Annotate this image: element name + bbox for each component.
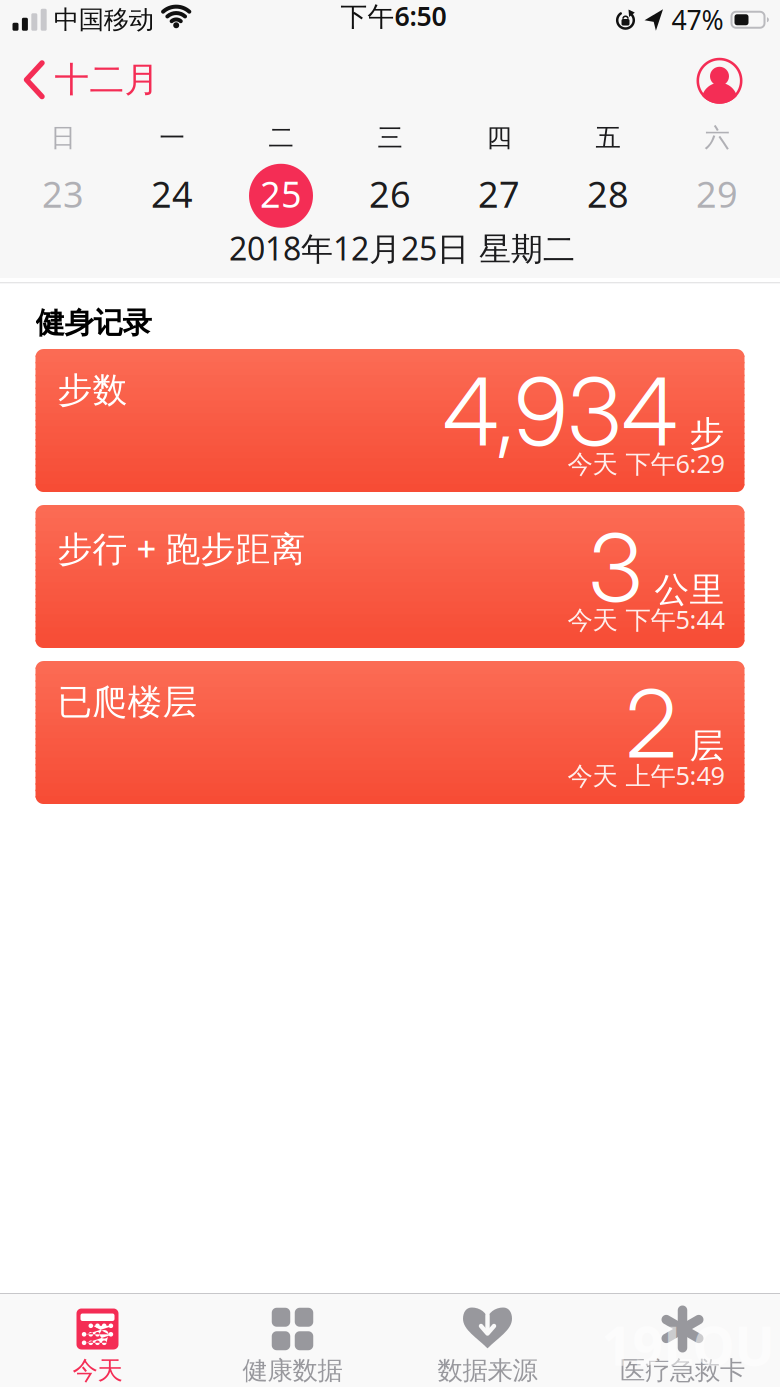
staticText: 19LOU bbox=[601, 1310, 774, 1380]
staticText: 中国移动 bbox=[54, 4, 154, 35]
button[interactable]: 医疗急救卡 bbox=[585, 1305, 780, 1386]
button[interactable]: 步数 bbox=[35, 349, 744, 492]
staticText: 二 bbox=[268, 122, 293, 153]
button[interactable]: 12月28日 bbox=[553, 164, 662, 228]
button[interactable]: 12月26日 bbox=[335, 164, 444, 228]
staticText: 28 bbox=[587, 170, 629, 218]
staticText: 五 bbox=[595, 122, 620, 153]
button[interactable]: 今天 bbox=[0, 1305, 195, 1386]
staticText: 步 bbox=[689, 413, 724, 455]
button[interactable]: 12月27日 bbox=[444, 164, 553, 228]
staticText: 2 bbox=[625, 667, 677, 780]
staticText: 十二月 bbox=[54, 58, 159, 101]
button[interactable]: 健康数据 bbox=[195, 1305, 390, 1386]
staticText: 23 bbox=[42, 170, 84, 218]
button[interactable]: 数据来源 bbox=[390, 1305, 585, 1386]
button[interactable]: 个人资料 bbox=[696, 46, 780, 92]
staticText: 步数 bbox=[57, 369, 127, 412]
staticText: 今天 下午6:29 bbox=[567, 446, 724, 480]
staticText: 47% bbox=[671, 2, 723, 37]
button[interactable]: 12月25日 bbox=[226, 164, 335, 228]
staticText: 健康数据 bbox=[242, 1355, 342, 1386]
staticText: 医疗急救卡 bbox=[620, 1355, 745, 1386]
staticText: 27 bbox=[478, 170, 520, 218]
staticText: 2018年12月25日 星期二 bbox=[229, 227, 575, 269]
staticText: 25 bbox=[260, 170, 302, 218]
staticText: 29 bbox=[696, 170, 738, 218]
staticText: 4,934 bbox=[442, 355, 677, 468]
staticText: 六 bbox=[704, 122, 729, 153]
staticText: 日 bbox=[50, 122, 75, 153]
button[interactable]: 12月29日 bbox=[662, 164, 771, 228]
staticText: 3 bbox=[588, 511, 642, 624]
button[interactable]: 12月24日 bbox=[117, 164, 226, 228]
staticText: 数据来源 bbox=[437, 1355, 537, 1386]
staticText: 24 bbox=[151, 170, 193, 218]
staticText: 步行 + 跑步距离 bbox=[57, 525, 305, 571]
button[interactable]: 返回 十二月 bbox=[0, 47, 159, 90]
staticText: 今天 bbox=[72, 1355, 122, 1386]
button[interactable]: 已爬楼层 bbox=[35, 661, 744, 804]
button[interactable]: 步行 + 跑步距离 bbox=[35, 505, 744, 648]
button[interactable]: 12月23日 bbox=[8, 164, 117, 228]
staticText: 今天 下午5:44 bbox=[567, 602, 724, 636]
staticText: 公里 bbox=[654, 569, 724, 611]
staticText: 三 bbox=[377, 122, 402, 153]
staticText: 健身记录 bbox=[35, 305, 151, 341]
staticText: 下午6:50 bbox=[340, 0, 446, 33]
staticText: 一 bbox=[159, 122, 184, 153]
staticText: 四 bbox=[486, 122, 511, 153]
staticText: 26 bbox=[369, 170, 411, 218]
staticText: 已爬楼层 bbox=[57, 681, 197, 724]
staticText: 层 bbox=[689, 725, 724, 767]
staticText: 今天 上午5:49 bbox=[567, 758, 724, 792]
